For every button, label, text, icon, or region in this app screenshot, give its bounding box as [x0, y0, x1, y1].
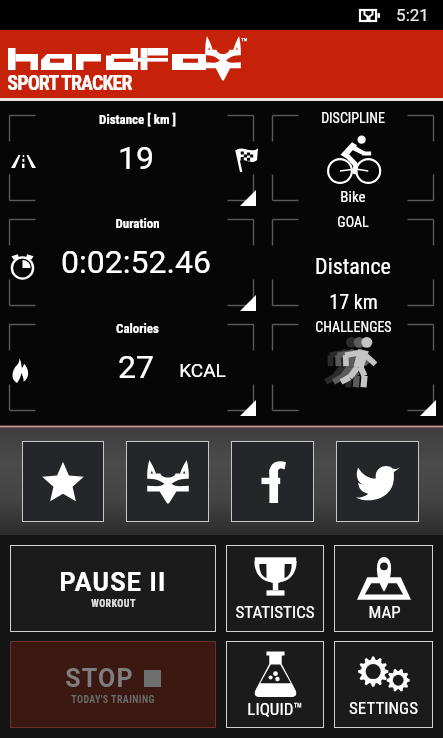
button[interactable]: Twitter	[336, 441, 419, 522]
staticText: PAUSE II	[59, 568, 167, 597]
staticText: STATISTICS	[235, 602, 315, 622]
staticText: STOP	[65, 664, 134, 693]
button[interactable]: STATISTICS	[226, 545, 324, 632]
staticText: Distance	[315, 254, 391, 280]
staticText: WORKOUT	[91, 598, 136, 610]
button[interactable]: Favorite	[22, 441, 104, 522]
button[interactable]: DISCIPLINE	[263, 106, 443, 210]
staticText: Duration	[115, 216, 160, 231]
button[interactable]: CHALLENGES	[263, 315, 443, 420]
staticText: CHALLENGES	[315, 319, 392, 335]
staticText: Distance [ km ]	[99, 112, 176, 127]
staticText: TODAY'S TRAINING	[71, 694, 155, 706]
button[interactable]: MAP	[334, 545, 433, 632]
staticText: 19	[118, 139, 154, 177]
button[interactable]: Facebook	[231, 441, 314, 522]
staticText: 17 km	[329, 290, 378, 313]
button[interactable]: LIQUID™	[226, 641, 324, 728]
button[interactable]: Hardfox	[126, 441, 209, 522]
staticText: KCAL	[179, 359, 226, 381]
staticText: LIQUID™	[247, 699, 303, 719]
staticText: SETTINGS	[349, 698, 418, 718]
button[interactable]: Distance [ km ]	[0, 106, 263, 210]
staticText: GOAL	[337, 214, 369, 230]
button[interactable]: GOAL	[263, 210, 443, 315]
staticText: DISCIPLINE	[321, 110, 385, 126]
staticText: SPORT TRACKER	[7, 71, 132, 94]
button[interactable]: SETTINGS	[334, 641, 433, 728]
staticText: 0:02:52.46	[61, 243, 211, 281]
staticText: 27	[118, 348, 154, 386]
staticText: 5:21	[396, 5, 429, 25]
staticText: MAP	[368, 602, 401, 622]
button[interactable]: Duration	[0, 210, 263, 315]
staticText: Bike	[340, 188, 366, 206]
button[interactable]: PAUSE II	[10, 545, 216, 632]
staticText: ™	[241, 36, 248, 49]
staticText: Calories	[116, 321, 159, 336]
button[interactable]: Calories	[0, 315, 263, 420]
button[interactable]: STOP	[10, 641, 216, 728]
